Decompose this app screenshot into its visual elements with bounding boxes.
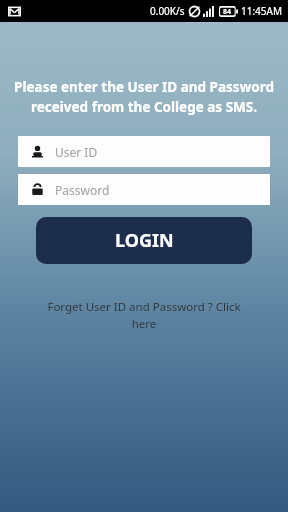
staticText: 11:45AM — [241, 4, 283, 18]
button[interactable]: LOGIN — [36, 217, 252, 264]
staticText: Forget User ID and Password ? Click here — [40, 299, 248, 332]
staticText: 0.00K/s — [150, 4, 185, 18]
button[interactable]: User ID — [18, 136, 270, 167]
staticText: User ID — [55, 144, 98, 160]
staticText: LOGIN — [115, 228, 174, 253]
button[interactable]: Forget User ID and Password ? Click here — [40, 299, 248, 332]
staticText: Password — [55, 182, 110, 198]
staticText: 84 — [223, 7, 232, 17]
button[interactable]: Password — [18, 174, 270, 205]
staticText: Please enter the User ID and Password re… — [14, 78, 274, 116]
